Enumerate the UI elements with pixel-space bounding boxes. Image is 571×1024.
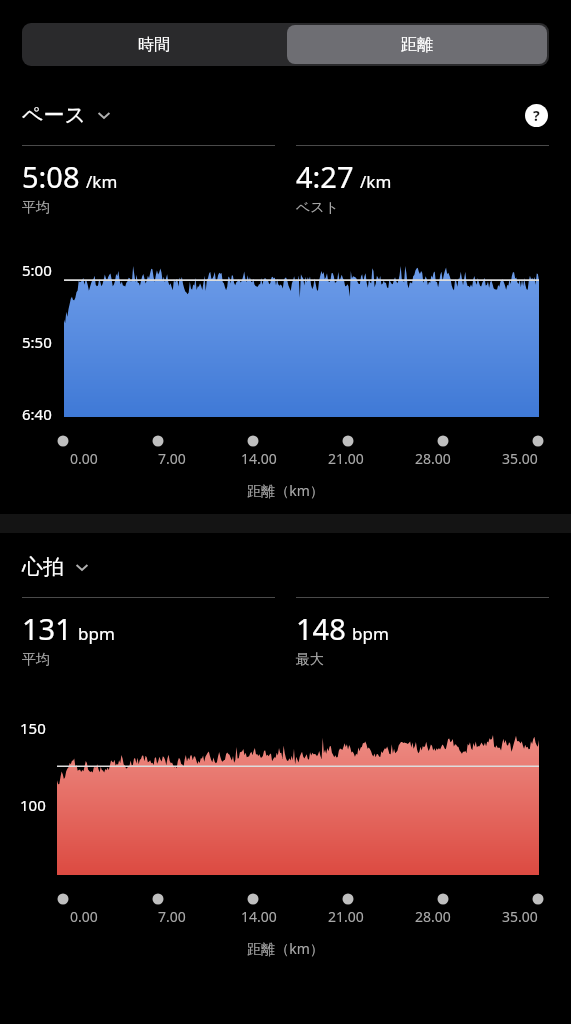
staticText: bpm [352,622,389,645]
button[interactable]: 時間 [22,23,285,66]
button[interactable]: 距離 [287,25,547,64]
staticText: 7.00 [158,449,186,468]
staticText: ? [533,106,540,125]
staticText: 距離（km） [0,939,571,958]
staticText: 21.00 [328,907,364,926]
button[interactable]: 心拍 [22,554,90,580]
staticText: 35.00 [502,449,538,468]
staticText: 最大 [296,651,324,669]
staticText: 5:50 [22,332,52,352]
staticText: 0.00 [70,907,98,926]
staticText: 時間 [138,35,170,55]
button[interactable]: ペース [22,102,112,128]
staticText: 4:27 [296,157,354,196]
staticText: /km [86,170,118,193]
staticText: ペース [22,102,86,128]
staticText: 心拍 [22,554,64,580]
staticText: 28.00 [415,449,451,468]
staticText: 148 [296,609,346,648]
staticText: 0.00 [70,449,98,468]
staticText: 5:08 [22,157,80,196]
staticText: 21.00 [328,449,364,468]
staticText: 6:40 [22,404,52,424]
staticText: 距離 [401,35,433,55]
staticText: 平均 [22,651,50,669]
staticText: 5:00 [22,260,52,280]
staticText: ベスト [296,199,339,217]
staticText: 35.00 [502,907,538,926]
staticText: 131 [22,609,72,648]
staticText: 平均 [22,199,50,217]
staticText: 距離（km） [0,481,571,500]
staticText: bpm [78,622,115,645]
staticText: 14.00 [241,907,277,926]
staticText: 14.00 [241,449,277,468]
staticText: /km [360,170,392,193]
staticText: 150 [20,718,46,738]
staticText: 100 [20,795,46,815]
button[interactable]: ヘルプ [525,104,548,127]
staticText: 7.00 [158,907,186,926]
staticText: 28.00 [415,907,451,926]
